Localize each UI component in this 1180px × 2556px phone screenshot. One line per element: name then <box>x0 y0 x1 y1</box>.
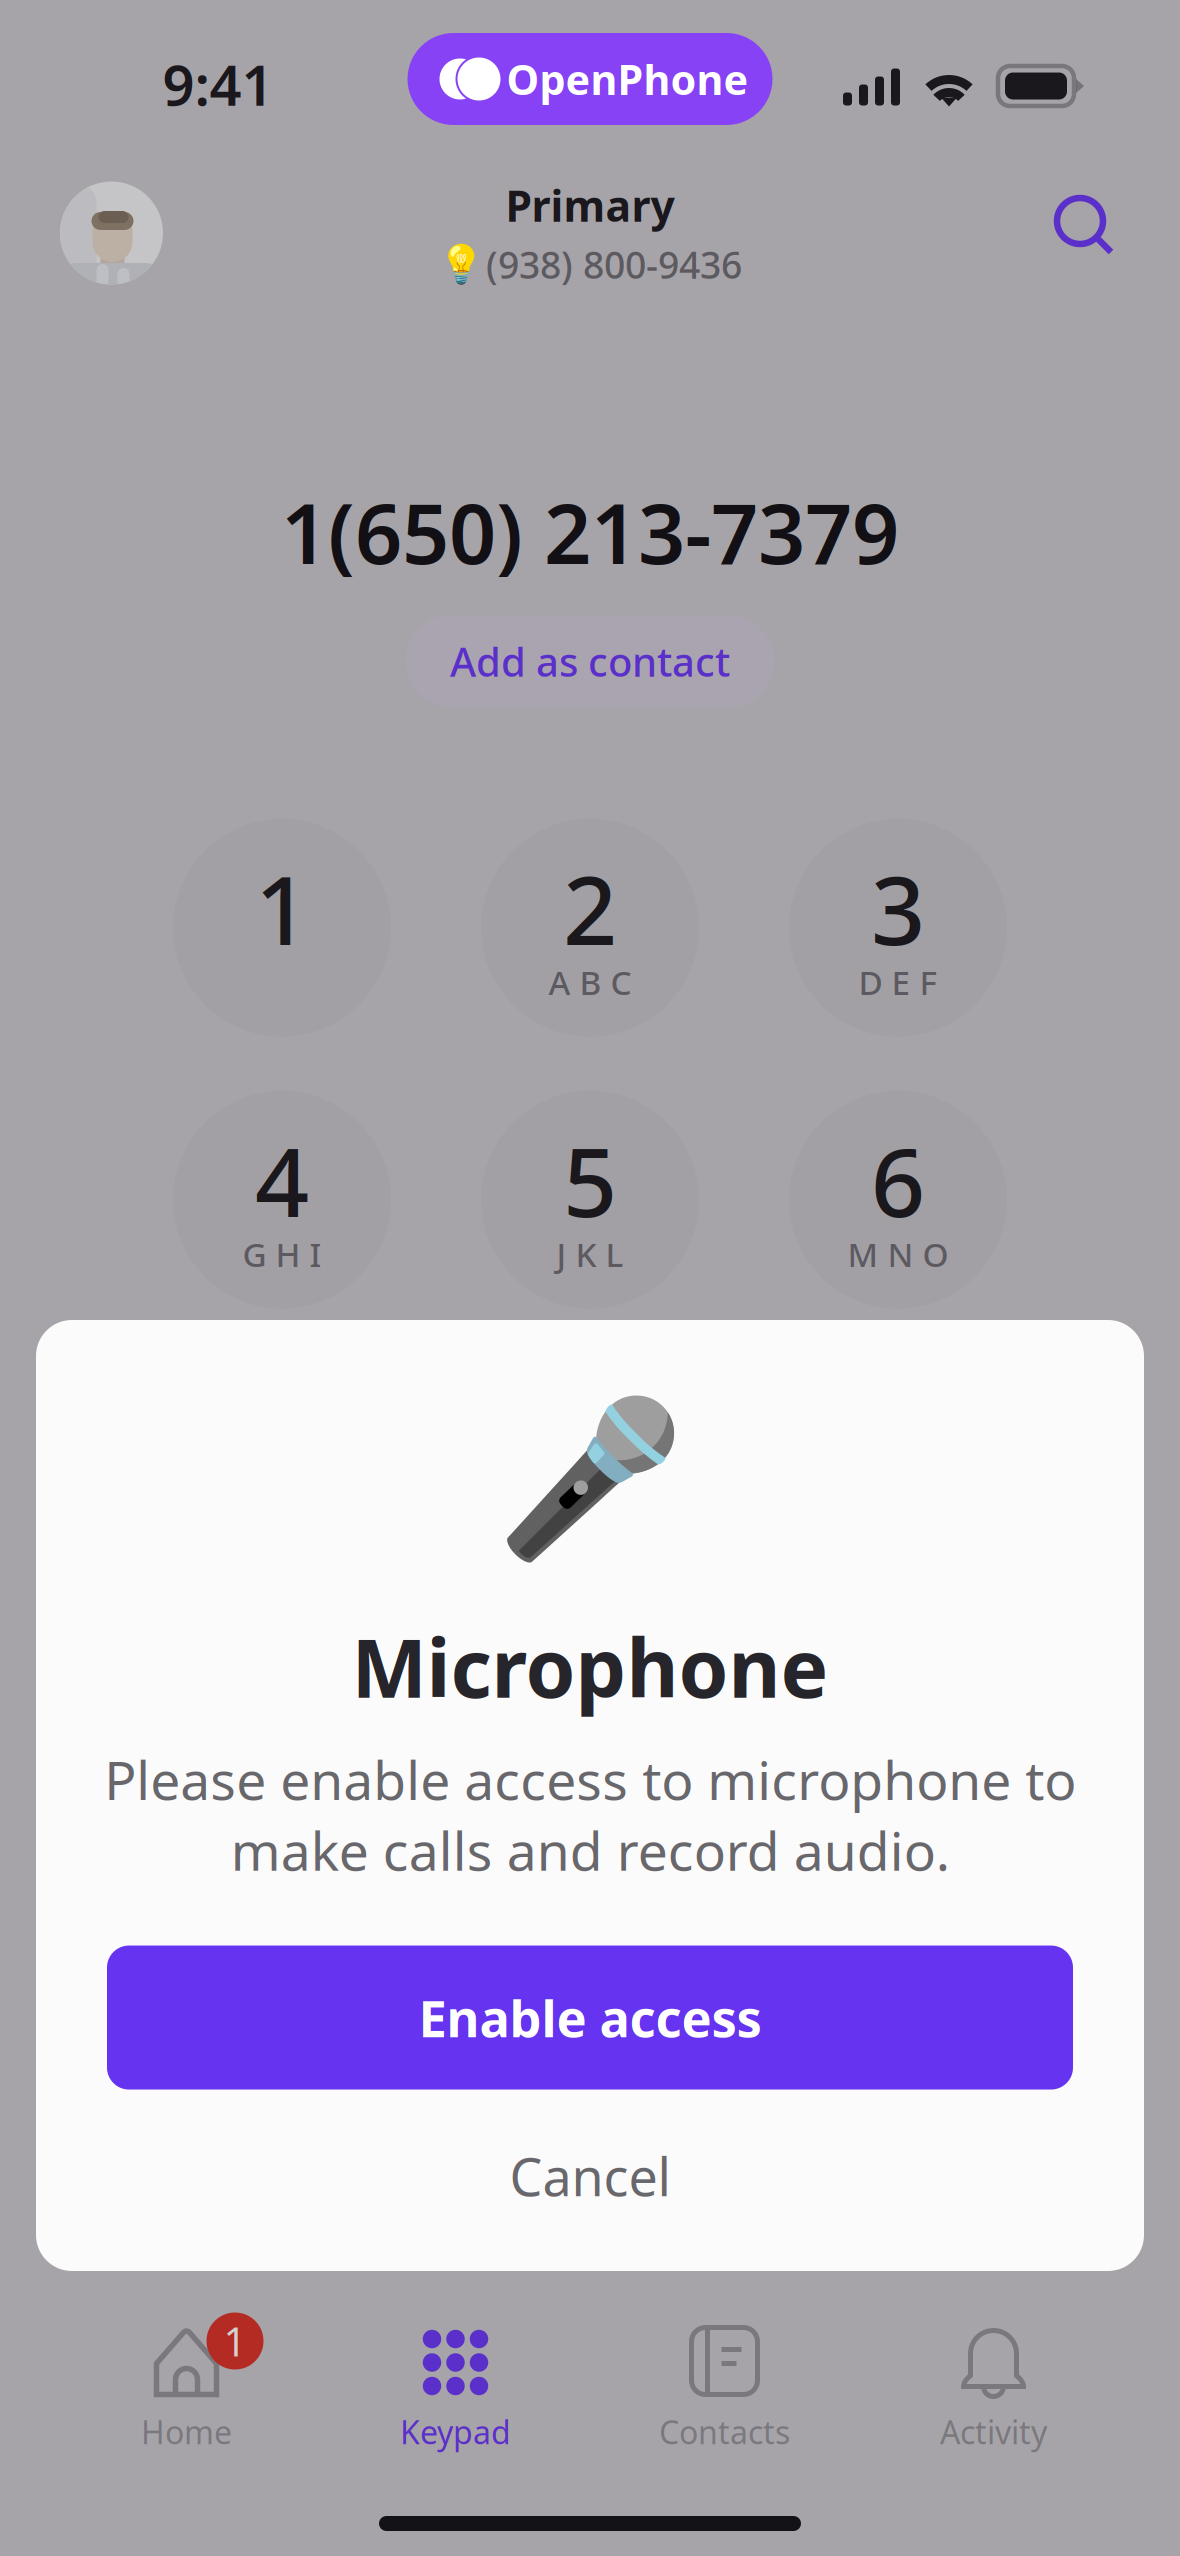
staticText: 💡 <box>438 243 484 286</box>
staticText: M N O <box>847 1232 948 1276</box>
button[interactable]: 5 <box>481 1091 699 1309</box>
staticText: D E F <box>858 960 937 1004</box>
button[interactable]: Enable access <box>107 1946 1073 2090</box>
button[interactable]: Search <box>1054 195 1114 255</box>
staticText: Activity <box>940 2410 1047 2453</box>
staticText: 4 <box>255 1117 309 1243</box>
staticText: J K L <box>556 1232 623 1276</box>
button[interactable]: 3 <box>789 819 1007 1037</box>
staticText: Cancel <box>509 2142 670 2211</box>
button[interactable]: Account <box>60 181 163 284</box>
staticText: 2 <box>563 845 617 971</box>
staticText: A B C <box>548 960 631 1004</box>
staticText: Keypad <box>400 2410 511 2453</box>
staticText: 🎤 <box>495 1392 684 1566</box>
staticText: Home <box>141 2410 232 2453</box>
button[interactable]: Contacts <box>590 2327 859 2453</box>
button[interactable]: 1 <box>173 819 391 1037</box>
button[interactable]: 2 <box>481 819 699 1037</box>
staticText: (938) 800-9436 <box>486 239 742 289</box>
staticText: Enable access <box>418 1984 761 2051</box>
button[interactable]: 6 <box>789 1091 1007 1309</box>
staticText: 1(650) 213-7379 <box>281 477 899 587</box>
staticText: Microphone <box>351 1614 828 1720</box>
button[interactable]: 4 <box>173 1091 391 1309</box>
staticText: 9:41 <box>162 47 273 121</box>
staticText: 6 <box>871 1117 925 1243</box>
staticText: 1 <box>255 845 309 971</box>
staticText: OpenPhone <box>506 52 748 106</box>
staticText: 1 <box>223 2314 246 2367</box>
button[interactable]: 1 <box>52 2327 321 2453</box>
staticText: 5 <box>563 1117 617 1243</box>
staticText: Contacts <box>659 2410 790 2453</box>
staticText: Add as contact <box>450 635 730 688</box>
button[interactable]: Add as contact <box>405 615 774 708</box>
staticText: Primary <box>505 177 674 234</box>
button[interactable]: Keypad <box>321 2327 590 2453</box>
staticText: G H I <box>242 1232 321 1276</box>
staticText: Please enable access to microphone to ma… <box>104 1744 1076 1885</box>
staticText: 3 <box>871 845 925 971</box>
button[interactable]: Activity <box>859 2327 1128 2453</box>
button[interactable]: Cancel <box>36 2120 1144 2233</box>
